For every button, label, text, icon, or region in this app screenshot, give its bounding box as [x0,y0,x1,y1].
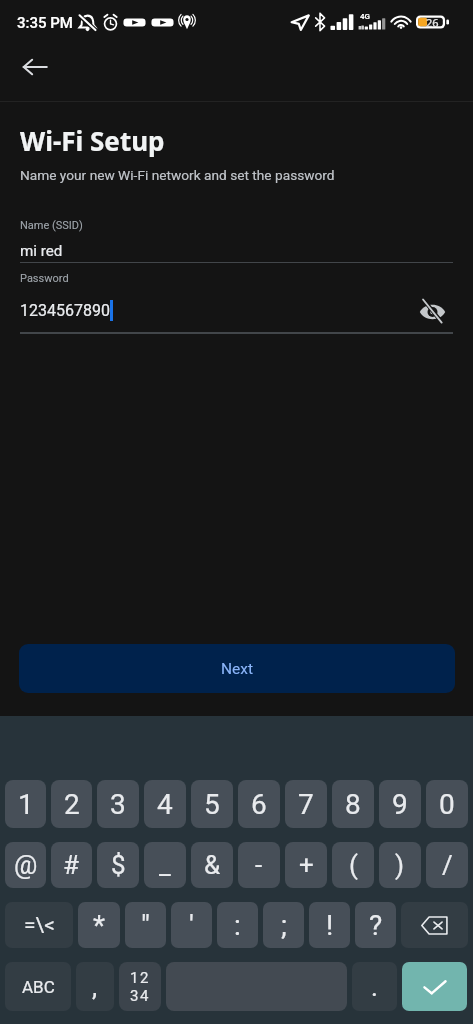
staticText: 3:35 PM [17,14,73,32]
button[interactable]: ( [332,842,374,888]
button[interactable]: 9 [379,780,421,828]
button[interactable]: Enter [402,962,467,1011]
staticText: . [371,972,378,1002]
button[interactable]: 3 [97,780,139,828]
button[interactable]: 4 [144,780,186,828]
staticText: ABC [22,977,55,997]
button[interactable]: # [51,842,92,888]
staticText: # [63,850,80,880]
staticText: : [234,909,241,942]
button[interactable]: Back [11,43,59,91]
staticText: " [141,909,150,942]
staticText: $ [111,850,126,880]
button[interactable]: : [217,902,258,948]
button[interactable]: 5 [191,780,233,828]
staticText: Next [221,660,254,678]
button[interactable]: =\< [5,902,73,948]
staticText: 9 [392,788,408,821]
staticText: 2 [64,788,80,821]
button[interactable]: & [191,842,233,888]
staticText: ! [326,909,334,942]
staticText: ' [189,909,194,942]
staticText: 4 [157,788,173,821]
staticText: 26 [426,15,439,30]
staticText: & [204,850,221,880]
staticText: 5 [204,788,220,821]
button[interactable]: . [352,962,397,1011]
staticText: 8 [345,788,361,821]
staticText: Password [20,272,69,285]
button[interactable]: 8 [332,780,374,828]
button[interactable]: Next [19,644,455,693]
staticText: ) [395,850,405,880]
staticText: ? [369,909,383,942]
staticText: 1 [18,788,34,821]
button[interactable]: ? [355,902,396,948]
staticText: _ [159,850,171,880]
button[interactable]: 7 [285,780,327,828]
button[interactable]: 1 [5,780,46,828]
button[interactable]: ' [171,902,212,948]
button[interactable]: $ [97,842,139,888]
button[interactable]: / [426,842,468,888]
button[interactable]: , [76,962,114,1011]
staticText: ; [281,909,287,942]
staticText: 12 [130,969,151,987]
staticText: 34 [130,987,151,1005]
button[interactable]: ; [263,902,304,948]
staticText: , [92,972,98,1002]
staticText: mi red [20,242,63,260]
button[interactable]: - [238,842,280,888]
button[interactable]: * [78,902,120,948]
staticText: @ [14,850,38,880]
staticText: 1234567890 [20,301,110,320]
staticText: / [442,850,453,880]
staticText: =\< [24,913,55,938]
button[interactable]: @ [5,842,46,888]
staticText: 6 [251,788,267,821]
button[interactable]: ) [379,842,421,888]
button[interactable]: 0 [426,780,468,828]
staticText: * [93,909,106,942]
button[interactable]: Show password [411,291,453,333]
button[interactable]: Backspace [401,902,468,948]
staticText: 7 [298,788,314,821]
staticText: ( [349,850,358,880]
button[interactable]: ABC [5,962,71,1011]
staticText: 4G [360,12,370,21]
staticText: Name your new Wi-Fi network and set the … [20,167,335,183]
button[interactable]: " [125,902,166,948]
staticText: Wi-Fi Setup [20,123,165,158]
staticText: 3 [110,788,126,821]
button[interactable]: 2 [51,780,92,828]
staticText: - [255,850,263,880]
button[interactable]: 12 [119,962,161,1011]
staticText: 0 [439,788,455,821]
button[interactable]: ! [309,902,350,948]
staticText: + [299,850,314,880]
button[interactable]: 6 [238,780,280,828]
staticText: Name (SSID) [20,219,83,232]
button[interactable]: + [285,842,327,888]
button[interactable]: _ [144,842,186,888]
